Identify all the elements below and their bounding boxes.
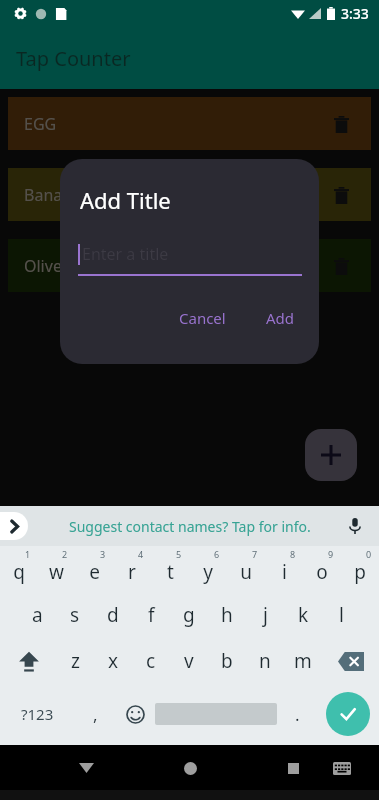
button[interactable]: v (170, 638, 208, 684)
button[interactable]: Backspace (322, 638, 379, 684)
button[interactable]: Home (175, 753, 205, 783)
button[interactable]: Delete EGG (325, 108, 357, 140)
staticText: g (183, 602, 195, 628)
button[interactable]: Suggest contact names? Tap for info. (69, 517, 311, 536)
staticText: y (203, 559, 213, 585)
button[interactable]: f (132, 592, 170, 638)
staticText: n (259, 648, 271, 674)
button[interactable]: i (265, 546, 303, 592)
button[interactable]: c (132, 638, 170, 684)
button[interactable]: a (19, 592, 56, 638)
staticText: 1 (25, 548, 31, 560)
staticText: t (167, 559, 174, 585)
staticText: s (70, 602, 80, 628)
button[interactable]: Delete Banana (325, 179, 357, 211)
button[interactable]: Recents (278, 753, 308, 783)
staticText: e (89, 559, 100, 585)
staticText: u (240, 559, 252, 585)
staticText: l (339, 602, 344, 628)
staticText: Add Title (80, 185, 171, 215)
button[interactable]: k (284, 592, 322, 638)
button[interactable]: j (246, 592, 284, 638)
staticText: 7 (252, 548, 258, 560)
button[interactable]: p (341, 546, 379, 592)
staticText: ?123 (21, 704, 54, 724)
button[interactable]: Banana (8, 168, 371, 221)
staticText: k (298, 602, 309, 628)
staticText: w (49, 559, 64, 585)
staticText: . (295, 703, 300, 726)
button[interactable]: b (208, 638, 246, 684)
staticText: v (184, 648, 194, 674)
button[interactable]: Add item (305, 429, 357, 481)
button[interactable]: Delete Olive (325, 250, 357, 282)
staticText: c (146, 648, 156, 674)
button[interactable]: Confirm (326, 692, 370, 736)
staticText: 6 (214, 548, 220, 560)
staticText: Banana (24, 184, 325, 206)
staticText: f (148, 602, 155, 628)
staticText: 2 (62, 548, 68, 560)
staticText: h (221, 602, 233, 628)
staticText: Olive (24, 255, 325, 277)
staticText: o (316, 559, 328, 585)
button[interactable]: g (170, 592, 208, 638)
button[interactable]: Cancel (171, 302, 234, 334)
staticText: 9 (328, 548, 334, 560)
staticText: 5 (176, 548, 182, 560)
button[interactable]: Add (258, 302, 303, 334)
button[interactable]: d (94, 592, 132, 638)
button[interactable]: o (303, 546, 341, 592)
button[interactable]: Expand suggestions (0, 512, 28, 540)
staticText: 4 (138, 548, 144, 560)
button[interactable]: Olive (8, 239, 371, 292)
button[interactable]: n (246, 638, 284, 684)
staticText: , (93, 703, 98, 726)
staticText: m (294, 648, 312, 674)
button[interactable]: m (284, 638, 322, 684)
staticText: 8 (290, 548, 296, 560)
staticText: x (108, 648, 119, 674)
staticText: p (354, 559, 366, 585)
staticText: Tap Counter (16, 45, 131, 72)
button[interactable]: h (208, 592, 246, 638)
staticText: EGG (24, 113, 325, 135)
button[interactable]: ?123 (0, 684, 75, 744)
staticText: q (13, 559, 25, 585)
staticText: a (32, 602, 43, 628)
staticText: d (107, 602, 119, 628)
staticText: b (221, 648, 233, 674)
staticText: j (263, 602, 268, 628)
staticText: Add (266, 308, 295, 328)
staticText: 3:33 (341, 4, 369, 23)
button[interactable]: u (227, 546, 265, 592)
button[interactable]: z (57, 638, 94, 684)
button[interactable]: q (0, 546, 37, 592)
button[interactable]: r (113, 546, 151, 592)
staticText: 3 (100, 548, 106, 560)
button[interactable]: Back (71, 753, 101, 783)
staticText: Cancel (179, 308, 226, 328)
button[interactable]: . (277, 684, 317, 744)
staticText: 0 (366, 548, 372, 560)
button[interactable]: Emoji (115, 684, 155, 744)
button[interactable]: Voice input (343, 514, 367, 538)
button[interactable]: Switch keyboard (327, 753, 357, 783)
staticText: Enter a title (82, 243, 169, 265)
button[interactable]: EGG (8, 97, 371, 150)
button[interactable]: w (37, 546, 75, 592)
button[interactable]: y (189, 546, 227, 592)
button[interactable]: e (75, 546, 113, 592)
button[interactable]: l (322, 592, 360, 638)
staticText: z (71, 648, 80, 674)
button[interactable]: x (94, 638, 132, 684)
staticText: r (128, 559, 136, 585)
button[interactable]: Shift (0, 638, 57, 684)
button[interactable]: t (151, 546, 189, 592)
button[interactable]: s (56, 592, 94, 638)
button[interactable]: , (75, 684, 115, 744)
staticText: i (282, 559, 287, 585)
